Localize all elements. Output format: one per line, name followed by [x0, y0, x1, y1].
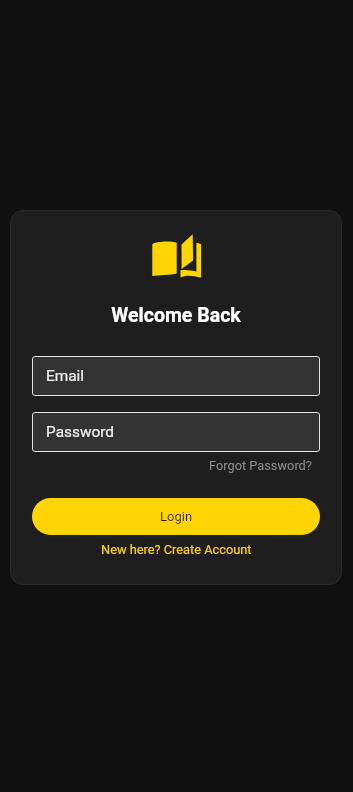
other: Book logo: [152, 232, 204, 280]
button[interactable]: Forgot Password?: [209, 458, 320, 473]
staticText: Forgot Password?: [209, 458, 312, 473]
staticText: Email: [46, 367, 85, 385]
staticText: Password: [46, 423, 114, 441]
staticText: Login: [160, 509, 193, 524]
button[interactable]: Password: [32, 412, 320, 452]
staticText: New here? Create Account: [101, 542, 252, 557]
button[interactable]: Email: [32, 356, 320, 396]
staticText: Welcome Back: [111, 304, 241, 327]
button[interactable]: Login: [32, 498, 320, 535]
button[interactable]: New here? Create Account: [101, 542, 252, 557]
